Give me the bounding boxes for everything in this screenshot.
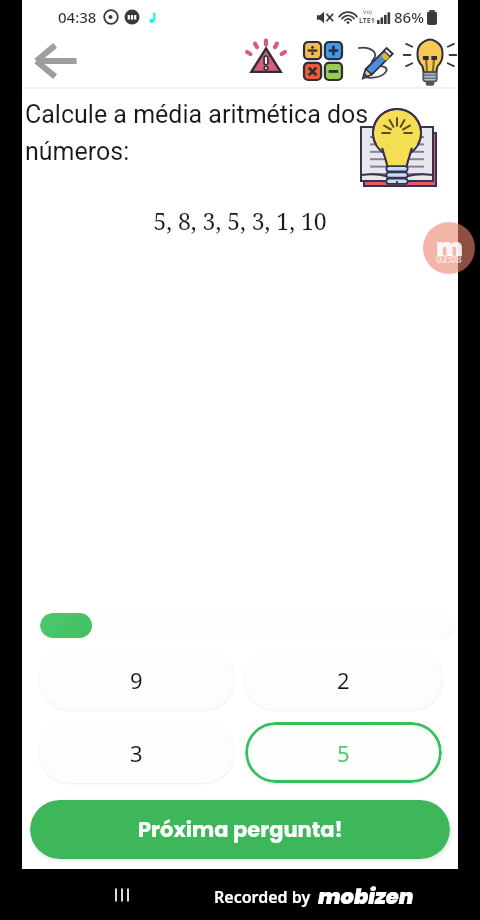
staticText: Calcule a média aritmética dos números: xyxy=(25,100,375,166)
staticText: Próxima pergunta! xyxy=(138,815,343,844)
staticText: 5 xyxy=(337,738,350,768)
button[interactable]: 5 xyxy=(245,722,442,783)
staticText: m xyxy=(436,230,463,265)
staticText: mobizen xyxy=(318,882,414,911)
button[interactable]: Scratch pad xyxy=(349,36,401,86)
button[interactable]: Report problem xyxy=(238,36,294,86)
staticText: 3 xyxy=(130,738,143,768)
button[interactable]: 9 xyxy=(39,649,234,710)
button[interactable]: Recents xyxy=(112,887,132,903)
button[interactable]: Calculator xyxy=(297,36,349,86)
staticText: Vo) xyxy=(363,8,372,16)
staticText: 04:38 xyxy=(58,7,97,27)
staticText: 86% xyxy=(394,7,424,27)
staticText: 9 xyxy=(130,665,143,695)
button[interactable]: Hint xyxy=(404,35,456,87)
staticText: 2 xyxy=(337,665,350,695)
staticText: 02:08 xyxy=(436,252,462,266)
button[interactable]: 2 xyxy=(245,649,442,710)
button[interactable]: Próxima pergunta! xyxy=(30,800,450,859)
staticText: LTE1 xyxy=(359,16,375,26)
staticText: 5, 8, 3, 5, 3, 1, 10 xyxy=(22,205,458,236)
staticText: Recorded by xyxy=(214,886,311,908)
button[interactable]: Back xyxy=(24,37,88,85)
button[interactable]: 3 xyxy=(39,722,234,783)
